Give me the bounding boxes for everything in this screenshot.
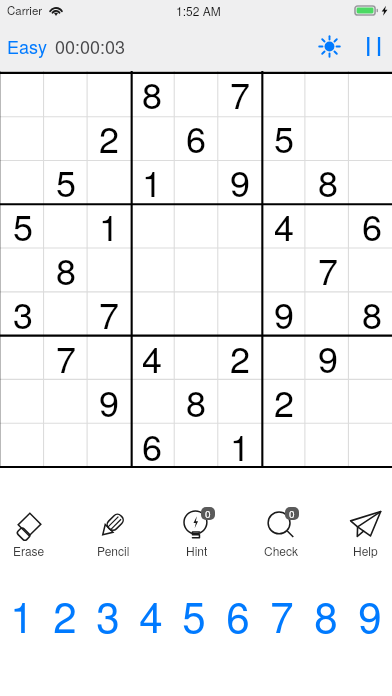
button[interactable]: 1 (0, 585, 43, 635)
button[interactable]: 4 (129, 585, 172, 635)
button[interactable]: 8 (304, 585, 348, 635)
staticText: 8 (318, 156, 339, 200)
button[interactable] (216, 117, 260, 161)
button[interactable] (348, 337, 392, 381)
button[interactable]: 0 (249, 506, 313, 568)
button[interactable]: 2 (86, 117, 129, 161)
button[interactable] (260, 249, 304, 293)
button[interactable]: Erase (0, 506, 61, 568)
button[interactable] (43, 205, 86, 249)
button[interactable] (172, 293, 216, 337)
button[interactable] (172, 205, 216, 249)
button[interactable] (0, 425, 43, 469)
button[interactable] (216, 205, 260, 249)
button[interactable]: Help (333, 506, 392, 568)
button[interactable] (172, 425, 216, 469)
button[interactable] (0, 161, 43, 205)
button[interactable] (129, 205, 172, 249)
button[interactable] (304, 205, 348, 249)
button[interactable]: 2 (216, 337, 260, 381)
button[interactable]: 8 (129, 73, 172, 117)
button[interactable] (216, 293, 260, 337)
button[interactable] (260, 425, 304, 469)
button[interactable]: 3 (86, 585, 129, 635)
button[interactable] (86, 337, 129, 381)
button[interactable] (260, 161, 304, 205)
button[interactable]: 7 (260, 585, 304, 635)
button[interactable] (43, 381, 86, 425)
button[interactable] (304, 381, 348, 425)
button[interactable]: 6 (172, 117, 216, 161)
button[interactable]: 1 (129, 161, 172, 205)
button[interactable] (0, 73, 43, 117)
button[interactable] (304, 293, 348, 337)
button[interactable]: Pencil (81, 506, 145, 568)
button[interactable]: 8 (304, 161, 348, 205)
button[interactable]: Brightness (310, 27, 348, 65)
button[interactable] (129, 249, 172, 293)
button[interactable]: 5 (172, 585, 216, 635)
button[interactable] (348, 249, 392, 293)
button[interactable]: 8 (43, 249, 86, 293)
button[interactable] (43, 425, 86, 469)
button[interactable]: 7 (304, 249, 348, 293)
button[interactable]: 1 (216, 425, 260, 469)
button[interactable]: 9 (216, 161, 260, 205)
button[interactable]: 2 (43, 585, 86, 635)
button[interactable] (129, 117, 172, 161)
button[interactable] (348, 425, 392, 469)
button[interactable] (0, 117, 43, 161)
button[interactable] (348, 73, 392, 117)
button[interactable]: 6 (129, 425, 172, 469)
button[interactable] (43, 73, 86, 117)
button[interactable] (304, 117, 348, 161)
button[interactable]: 2 (260, 381, 304, 425)
button[interactable] (86, 161, 129, 205)
button[interactable]: 9 (260, 293, 304, 337)
button[interactable]: 0 (165, 506, 229, 568)
button[interactable] (43, 293, 86, 337)
button[interactable] (348, 161, 392, 205)
button[interactable]: 9 (304, 337, 348, 381)
button[interactable] (43, 117, 86, 161)
button[interactable] (0, 337, 43, 381)
button[interactable]: 5 (43, 161, 86, 205)
button[interactable] (129, 293, 172, 337)
button[interactable]: 7 (86, 293, 129, 337)
button[interactable]: 5 (0, 205, 43, 249)
button[interactable]: Easy (7, 33, 48, 59)
button[interactable] (129, 381, 172, 425)
button[interactable] (86, 73, 129, 117)
button[interactable] (0, 381, 43, 425)
button[interactable] (86, 249, 129, 293)
button[interactable]: 6 (348, 205, 392, 249)
button[interactable]: 9 (86, 381, 129, 425)
button[interactable]: 6 (216, 585, 260, 635)
button[interactable]: 4 (129, 337, 172, 381)
button[interactable] (260, 73, 304, 117)
button[interactable]: 4 (260, 205, 304, 249)
button[interactable] (304, 425, 348, 469)
button[interactable] (172, 337, 216, 381)
button[interactable] (216, 381, 260, 425)
button[interactable] (304, 73, 348, 117)
button[interactable]: 8 (348, 293, 392, 337)
button[interactable]: 9 (348, 585, 392, 635)
button[interactable]: 3 (0, 293, 43, 337)
button[interactable] (216, 249, 260, 293)
button[interactable] (260, 337, 304, 381)
button[interactable] (0, 249, 43, 293)
button[interactable] (86, 425, 129, 469)
button[interactable] (172, 249, 216, 293)
button[interactable]: Pause (354, 27, 392, 65)
button[interactable]: 7 (43, 337, 86, 381)
button[interactable] (348, 117, 392, 161)
button[interactable]: 7 (216, 73, 260, 117)
button[interactable] (348, 381, 392, 425)
button[interactable]: 5 (260, 117, 304, 161)
button[interactable] (172, 161, 216, 205)
button[interactable]: 8 (172, 381, 216, 425)
button[interactable] (172, 73, 216, 117)
button[interactable]: 1 (86, 205, 129, 249)
staticText: 1:52 AM (176, 2, 221, 19)
